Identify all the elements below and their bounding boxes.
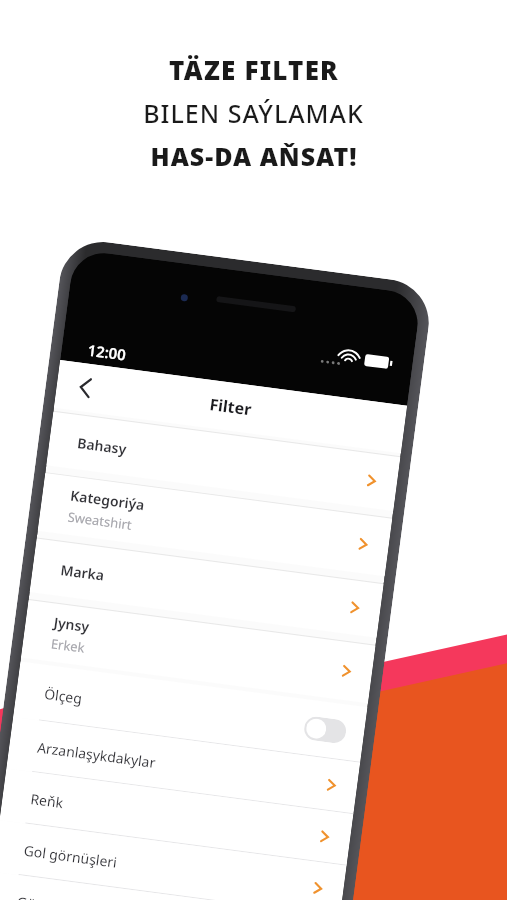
button[interactable]: Arzanlaşykdakylar [6,717,360,814]
staticText: Erkek [50,634,86,657]
staticText: Reňk [29,789,65,812]
button[interactable]: Göwrümi [0,872,340,900]
button[interactable]: Marka [30,539,384,638]
staticText: Bahasy [76,433,128,459]
button[interactable]: Back [69,371,103,405]
staticText: Jynsy [53,613,91,636]
button[interactable]: Jynsy [21,600,376,703]
staticText: TÄZE FILTER [169,52,339,87]
button[interactable]: Toggle size filter [303,715,347,744]
staticText: Kategoriýa [69,486,146,514]
staticText: BILEN SAÝLAMAK [143,96,364,130]
staticText: Arzanlaşykdakylar [36,737,157,772]
staticText: Filter [208,393,253,420]
staticText: Sweatshirt [67,507,133,534]
staticText: HAS-DA AŇSAT! [150,139,358,173]
button[interactable]: Kategoriýa [38,473,392,576]
staticText: Göwrümi [16,892,79,900]
staticText: 12:00 [86,340,128,365]
button[interactable]: Bahasy [46,412,400,511]
button[interactable]: Ölçeg [13,661,367,763]
staticText: Gol görnüşleri [23,841,118,872]
button[interactable]: Filter [54,360,407,453]
button[interactable]: Reňk [0,769,353,866]
button[interactable]: Gol görnüşleri [0,820,347,900]
staticText: Ölçeg [43,684,83,708]
staticText: Marka [60,560,106,585]
